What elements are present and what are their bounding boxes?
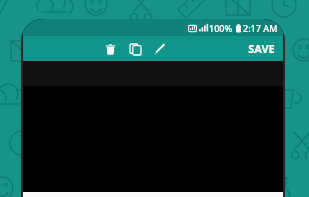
button[interactable]: Copy (124, 38, 146, 60)
button[interactable]: Edit (149, 38, 171, 60)
staticText: SAVE (248, 41, 275, 56)
staticText: 100% (209, 22, 233, 34)
staticText: 2:17 AM (243, 22, 278, 34)
button[interactable]: SAVE (240, 36, 283, 61)
button[interactable]: Delete (99, 38, 121, 60)
